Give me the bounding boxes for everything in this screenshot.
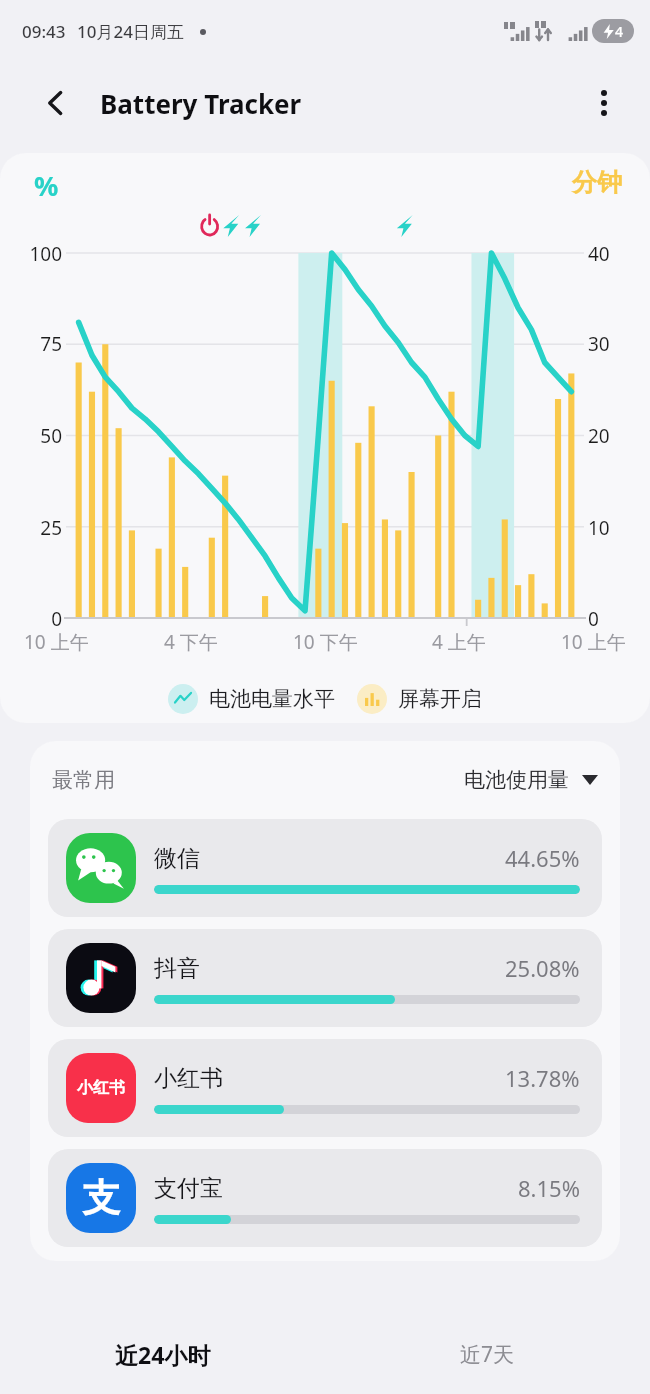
staticText: 10月24日周五	[77, 20, 184, 43]
staticText: 近24小时	[115, 1339, 211, 1370]
button[interactable]: 支	[48, 1149, 602, 1247]
staticText: 10 上午	[561, 629, 626, 655]
staticText: %	[34, 167, 59, 204]
button[interactable]: 微信	[48, 819, 602, 917]
staticText: 40	[588, 241, 648, 267]
staticText: 4	[615, 22, 624, 41]
button[interactable]: 近24小时	[0, 1314, 325, 1394]
staticText: Battery Tracker	[100, 86, 302, 121]
staticText: 25.08%	[505, 953, 580, 983]
button[interactable]: 近7天	[325, 1314, 650, 1394]
button[interactable]: Back	[34, 81, 78, 125]
button[interactable]: 抖音	[48, 929, 602, 1027]
staticText: 50	[0, 423, 62, 449]
staticText: 分钟	[572, 167, 622, 198]
staticText: 0	[588, 606, 648, 632]
staticText: 10 下午	[293, 629, 358, 655]
staticText: 10	[588, 515, 648, 541]
staticText: 屏幕开启	[398, 686, 482, 712]
staticText: 电池使用量	[464, 767, 569, 793]
button[interactable]: More options	[582, 81, 626, 125]
staticText: 抖音	[154, 954, 200, 983]
staticText: 09:43	[22, 20, 66, 43]
staticText: 0	[0, 606, 62, 632]
staticText: 支付宝	[154, 1174, 223, 1203]
staticText: 25	[0, 515, 62, 541]
staticText: 44.65%	[505, 843, 580, 873]
staticText: 30	[588, 331, 648, 357]
staticText: 最常用	[52, 767, 115, 793]
staticText: 支	[82, 1174, 120, 1222]
staticText: 小红书	[154, 1064, 223, 1093]
staticText: 4 上午	[432, 629, 486, 655]
staticText: 4 下午	[164, 629, 218, 655]
button[interactable]: 电池使用量	[464, 767, 598, 793]
staticText: 电池电量水平	[209, 686, 335, 712]
staticText: 10 上午	[24, 629, 89, 655]
staticText: 8.15%	[518, 1173, 580, 1203]
staticText: 近7天	[460, 1340, 515, 1369]
staticText: 13.78%	[505, 1063, 580, 1093]
button[interactable]: 小红书	[48, 1039, 602, 1137]
staticText: 小红书	[77, 1078, 125, 1098]
staticText: 75	[0, 331, 62, 357]
staticText: 微信	[154, 844, 200, 873]
staticText: 20	[588, 423, 648, 449]
staticText: 100	[0, 241, 62, 267]
